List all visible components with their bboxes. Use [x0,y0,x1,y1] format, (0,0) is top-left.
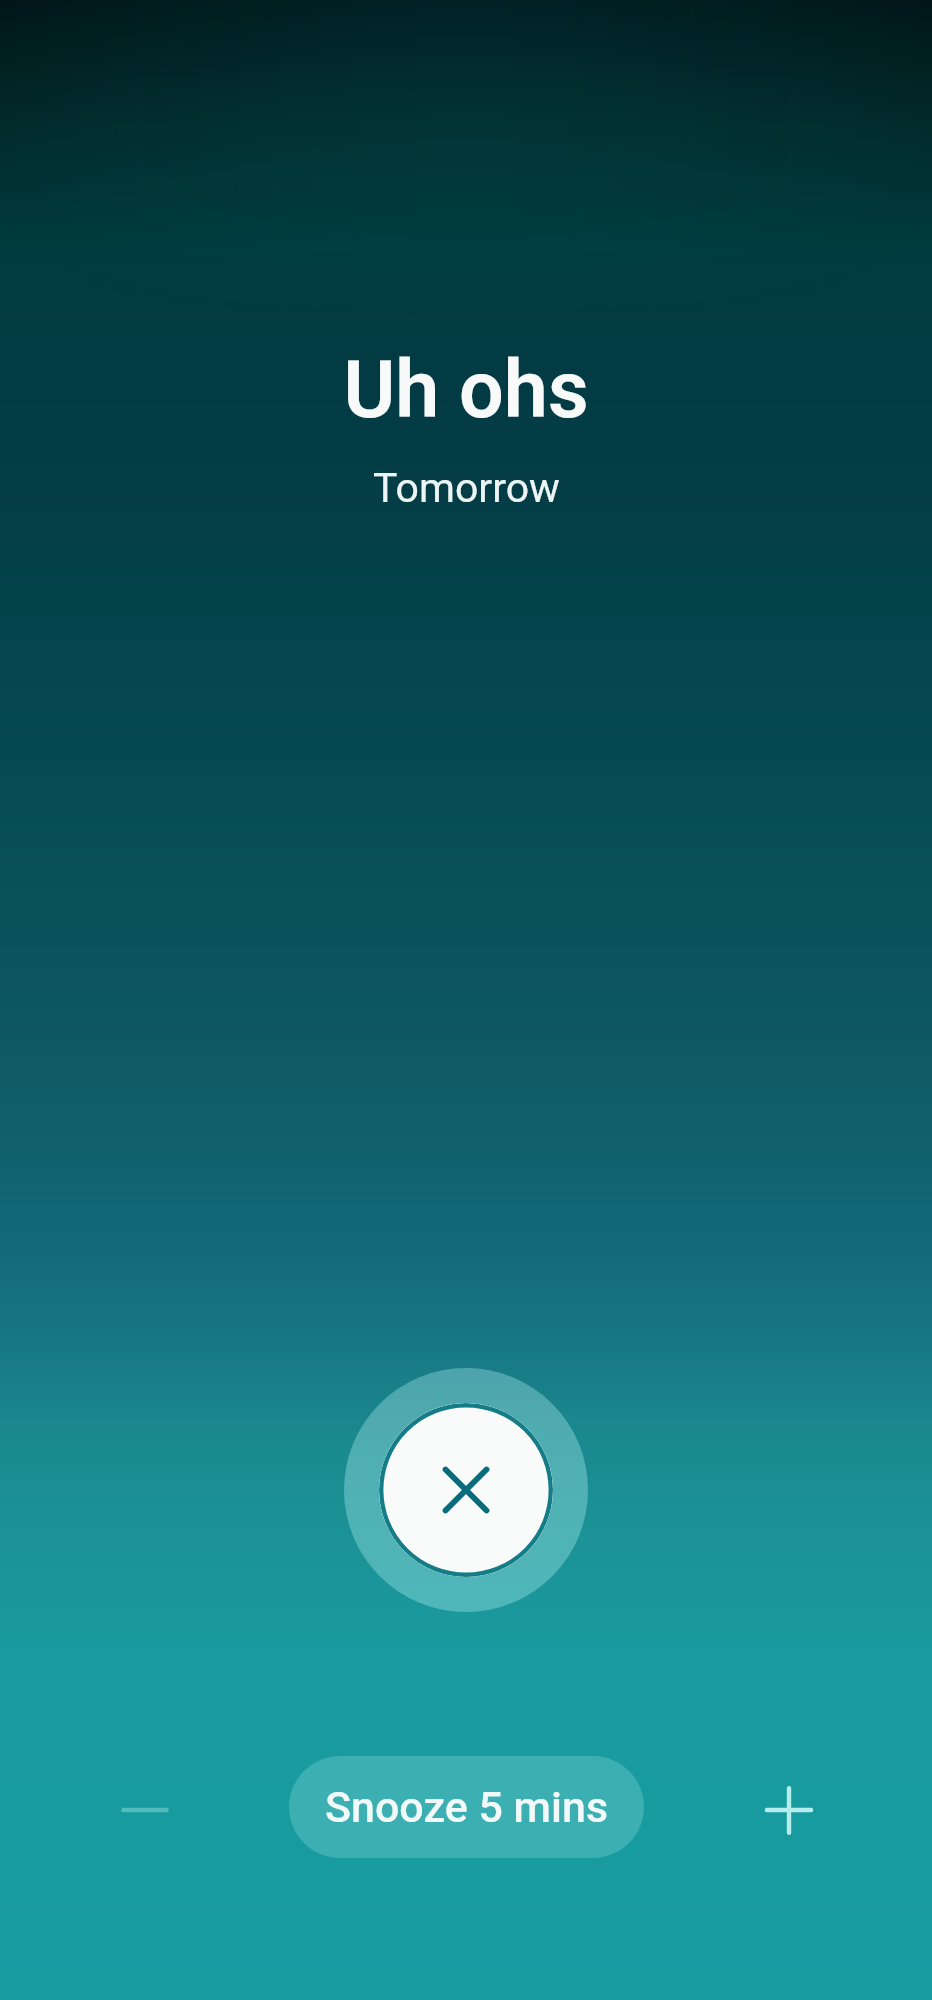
staticText: Snooze 5 mins [325,1782,609,1832]
button[interactable]: Increase snooze duration [644,1756,932,1858]
button[interactable]: Decrease snooze duration [0,1756,289,1858]
button[interactable]: Snooze 5 mins [289,1756,644,1858]
staticText: Uh ohs [343,344,589,437]
staticText: Tomorrow [373,464,560,512]
button[interactable]: Dismiss alarm [344,1368,588,1612]
